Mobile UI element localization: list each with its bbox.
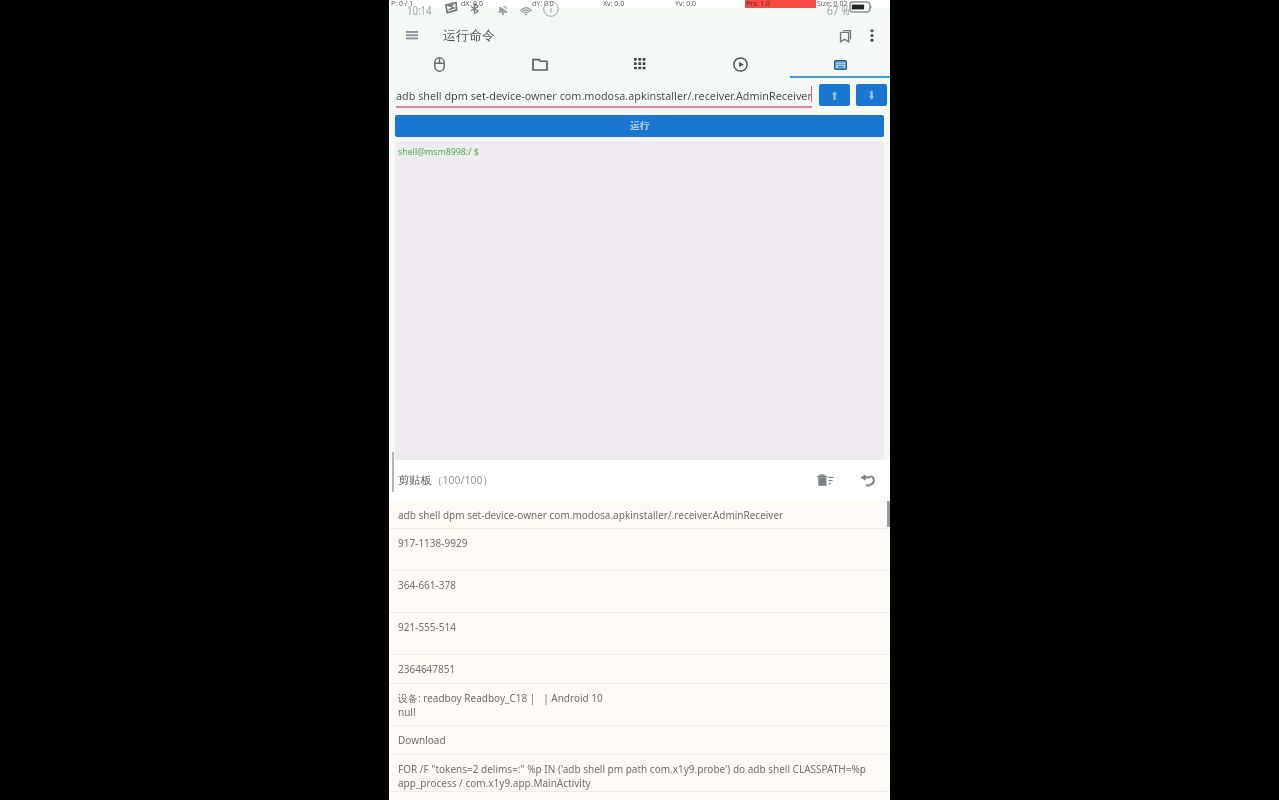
staticText: null: [398, 705, 416, 719]
button[interactable]: Undo: [849, 460, 885, 500]
button[interactable]: Mouse control: [389, 52, 490, 78]
button[interactable]: 921-555-514: [389, 613, 890, 654]
button[interactable]: App list: [590, 52, 690, 78]
staticText: 剪贴板: [398, 473, 432, 487]
staticText: app_process / com.x1y9.app.MainActivity: [398, 776, 591, 790]
staticText: 917-1138-9929: [398, 536, 468, 550]
staticText: FOR /F "tokens=2 delims=:" %p IN ('adb s…: [398, 762, 866, 776]
staticText: Yv: 0.0: [675, 0, 697, 9]
staticText: adb shell dpm set-device-owner com.modos…: [396, 88, 812, 103]
staticText: 10:14: [407, 1, 432, 19]
staticText: 运行: [630, 120, 650, 132]
button[interactable]: Download: [389, 726, 890, 754]
button[interactable]: adb shell dpm set-device-owner com.modos…: [389, 500, 890, 528]
button[interactable]: Scripts: [690, 52, 790, 78]
button[interactable]: Open navigation drawer: [391, 19, 433, 52]
button[interactable]: 2364647851: [389, 655, 890, 683]
staticText: 运行命令: [443, 27, 495, 43]
staticText: 设备: readboy Readboy_C18 | | Android 10: [398, 691, 603, 705]
staticText: 2364647851: [398, 662, 456, 676]
staticText: 364-661-378: [398, 578, 456, 592]
button[interactable]: 364-661-378: [389, 571, 890, 612]
button[interactable]: Run command: [790, 52, 890, 78]
staticText: 921-555-514: [398, 620, 456, 634]
button[interactable]: Saved commands: [829, 19, 861, 52]
staticText: 67 %: [827, 1, 850, 19]
staticText: Size: 0.02: [817, 0, 848, 9]
staticText: （100/100）: [432, 473, 493, 487]
staticText: adb shell dpm set-device-owner com.modos…: [398, 508, 784, 522]
button[interactable]: 运行: [395, 115, 884, 137]
staticText: Xv: 0.0: [603, 0, 625, 9]
staticText: Prs: 1.0: [746, 0, 771, 9]
staticText: Download: [398, 733, 446, 747]
button[interactable]: Next command: [856, 84, 887, 106]
button[interactable]: 设备: readboy Readboy_C18 | | Android 10: [389, 684, 890, 725]
staticText: P: 0 / 1: [391, 0, 414, 9]
button[interactable]: Previous command: [819, 84, 850, 106]
staticText: dY: 0.0: [532, 0, 554, 9]
button[interactable]: File manager: [490, 52, 590, 78]
button[interactable]: FOR /F "tokens=2 delims=:" %p IN ('adb s…: [389, 755, 890, 791]
staticText: dX: 0.0: [461, 0, 483, 9]
staticText: shell@msm8998:/ $: [398, 146, 479, 158]
button[interactable]: More options: [857, 19, 887, 52]
button[interactable]: Clear clipboard history: [807, 460, 843, 500]
button[interactable]: 917-1138-9929: [389, 529, 890, 570]
